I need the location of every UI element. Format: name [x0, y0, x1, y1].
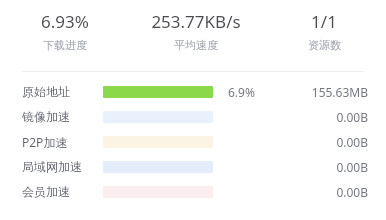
- staticText: 0.00B: [336, 184, 368, 200]
- staticText: 会员加速: [22, 184, 70, 199]
- staticText: 原始地址: [22, 84, 70, 99]
- button[interactable]: 原始地址: [0, 79, 386, 104]
- staticText: 平均速度: [174, 38, 218, 52]
- button[interactable]: 1/1: [262, 10, 386, 52]
- staticText: 0.00B: [336, 159, 368, 175]
- staticText: P2P加速: [22, 134, 68, 150]
- button[interactable]: 局域网加速: [0, 154, 386, 179]
- button[interactable]: P2P加速: [0, 129, 386, 154]
- staticText: 253.77KB/s: [151, 10, 241, 33]
- staticText: 6.93%: [41, 10, 89, 33]
- staticText: 6.9%: [228, 84, 255, 100]
- staticText: 镜像加速: [22, 109, 70, 124]
- staticText: 0.00B: [336, 134, 368, 150]
- staticText: 0.00B: [336, 109, 368, 125]
- staticText: 155.63MB: [311, 84, 368, 100]
- button[interactable]: 镜像加速: [0, 104, 386, 129]
- button[interactable]: 253.77KB/s: [130, 10, 262, 52]
- staticText: 资源数: [308, 38, 341, 52]
- staticText: 下载进度: [43, 38, 87, 52]
- staticText: 1/1: [311, 10, 337, 33]
- button[interactable]: 6.93%: [0, 10, 130, 52]
- staticText: 局域网加速: [22, 159, 82, 174]
- button[interactable]: 会员加速: [0, 179, 386, 204]
